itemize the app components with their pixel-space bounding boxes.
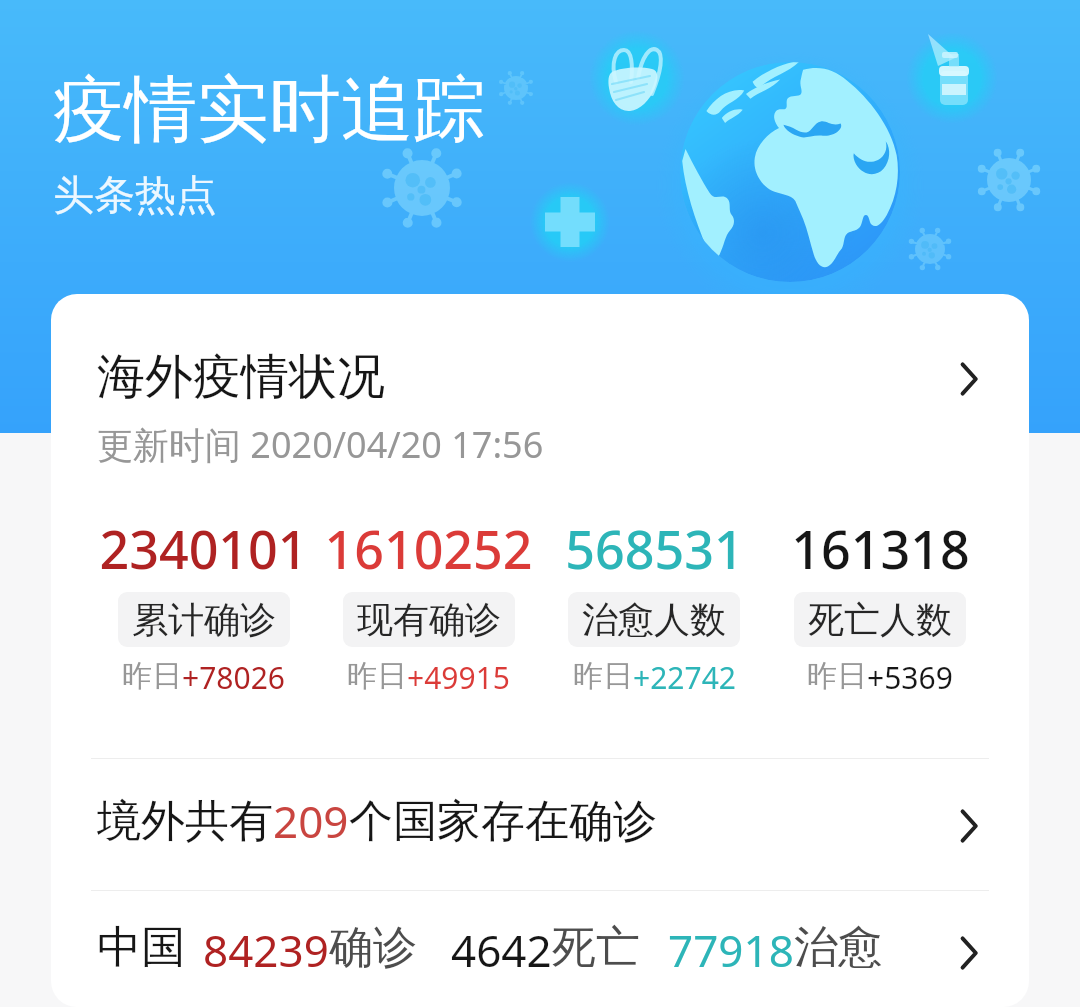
staticText: 昨日 (807, 657, 867, 695)
other: 中国疫情详情 (951, 936, 985, 970)
staticText: +22742 (633, 657, 736, 698)
staticText: 更新时间 2020/04/20 17:56 (97, 420, 544, 469)
staticText: 确诊 (329, 920, 417, 975)
staticText: 治愈 (794, 920, 882, 975)
staticText: +49915 (407, 657, 510, 698)
staticText: 现有确诊 (357, 597, 501, 642)
staticText: 1610252 (324, 513, 533, 584)
staticText: 2340101 (99, 513, 308, 584)
staticText: 4642 (451, 920, 552, 975)
other: 境外国家确诊详情 (951, 809, 985, 843)
staticText: 568531 (565, 513, 744, 584)
staticText: 累计确诊 (132, 597, 276, 642)
staticText: 治愈人数 (582, 597, 726, 642)
staticText: 疫情实时追踪 (53, 65, 485, 156)
staticText: 161318 (791, 513, 970, 584)
staticText: 头条热点 (53, 170, 217, 222)
staticText: 个国家存在确诊 (349, 794, 657, 849)
staticText: 昨日 (573, 657, 633, 695)
staticText: 昨日 (347, 657, 407, 695)
staticText: 死亡人数 (808, 597, 952, 642)
staticText: 中国 (97, 920, 185, 975)
button[interactable]: 境外共有 (51, 759, 1029, 890)
staticText: 昨日 (122, 657, 182, 695)
staticText: 209 (273, 791, 349, 851)
button[interactable]: 海外疫情状况 (51, 294, 1029, 413)
other: 海外疫情状况详情 (951, 362, 985, 396)
staticText: 海外疫情状况 (97, 347, 385, 407)
staticText: 死亡 (552, 920, 640, 975)
button[interactable]: 中国 (51, 891, 1029, 1007)
staticText: +5369 (867, 657, 953, 698)
staticText: 77918 (668, 920, 794, 975)
staticText: 境外共有 (97, 794, 273, 849)
staticText: 84239 (203, 920, 329, 975)
staticText: +78026 (182, 657, 285, 698)
